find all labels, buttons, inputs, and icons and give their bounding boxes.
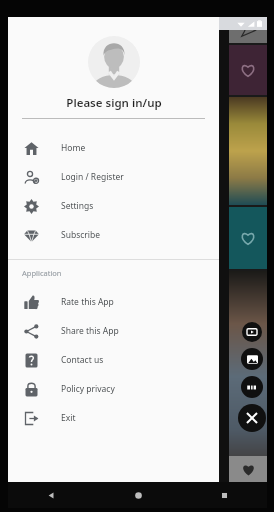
- staticText: Policy privacy: [61, 383, 115, 395]
- button[interactable]: Recents: [181, 482, 267, 508]
- button[interactable]: Action: [241, 348, 263, 370]
- button[interactable]: Login / Register: [8, 162, 219, 191]
- button[interactable]: Back: [8, 482, 95, 508]
- button[interactable]: Policy privacy: [8, 374, 219, 403]
- button[interactable]: Home: [95, 482, 181, 508]
- staticText: Contact us: [61, 354, 104, 366]
- staticText: Share this App: [61, 325, 119, 337]
- button[interactable]: Contact us: [8, 345, 219, 374]
- button[interactable]: Action: [238, 404, 266, 432]
- button[interactable]: Exit: [8, 403, 219, 432]
- staticText: Home: [61, 142, 86, 154]
- staticText: Login / Register: [61, 171, 124, 183]
- staticText: Rate this App: [61, 296, 114, 308]
- button[interactable]: Rate this App: [8, 287, 219, 316]
- button[interactable]: Share this App: [8, 316, 219, 345]
- staticText: Subscribe: [61, 229, 101, 241]
- staticText: Settings: [61, 200, 94, 212]
- button[interactable]: Home: [8, 133, 219, 162]
- staticText: Exit: [61, 412, 76, 424]
- staticText: Please sign in/up: [66, 95, 162, 111]
- button[interactable]: Subscribe: [8, 220, 219, 249]
- button[interactable]: Action: [242, 322, 262, 342]
- staticText: Application: [22, 268, 62, 278]
- button[interactable]: Action: [241, 376, 263, 398]
- button[interactable]: Settings: [8, 191, 219, 220]
